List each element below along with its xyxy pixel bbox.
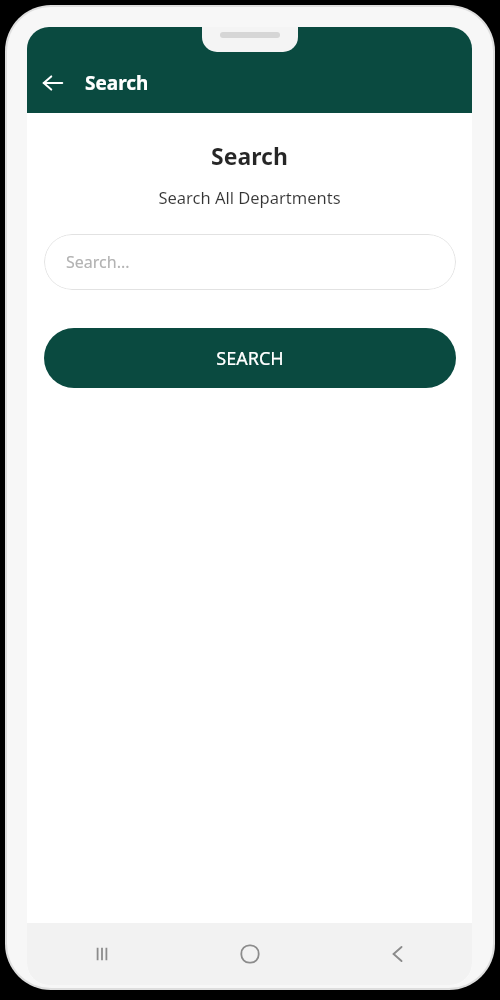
staticText: Search All Departments xyxy=(158,186,341,208)
button[interactable]: Recent apps xyxy=(27,923,176,985)
staticText: SEARCH xyxy=(216,346,284,371)
button[interactable]: Home xyxy=(176,923,324,985)
button[interactable]: Search... xyxy=(44,234,456,290)
staticText: Search xyxy=(211,140,288,171)
button[interactable]: Back xyxy=(324,923,472,985)
staticText: Search... xyxy=(66,251,130,273)
button[interactable]: SEARCH xyxy=(44,328,456,388)
button[interactable]: Back xyxy=(33,63,73,103)
staticText: Search xyxy=(85,70,149,96)
